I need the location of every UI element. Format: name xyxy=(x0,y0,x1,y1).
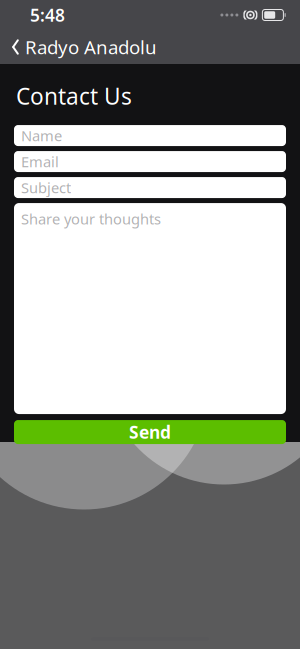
button[interactable]: Send xyxy=(14,420,286,444)
staticText: Name xyxy=(21,126,62,145)
staticText: Radyo Anadolu xyxy=(25,35,157,59)
staticText: Share your thoughts xyxy=(21,209,161,229)
staticText: Subject xyxy=(21,178,71,197)
staticText: Send xyxy=(129,420,171,443)
staticText: Contact Us xyxy=(16,81,132,111)
button[interactable]: Radyo Anadolu xyxy=(0,30,165,64)
staticText: 5:48 xyxy=(30,3,65,26)
staticText: Email xyxy=(21,152,59,171)
